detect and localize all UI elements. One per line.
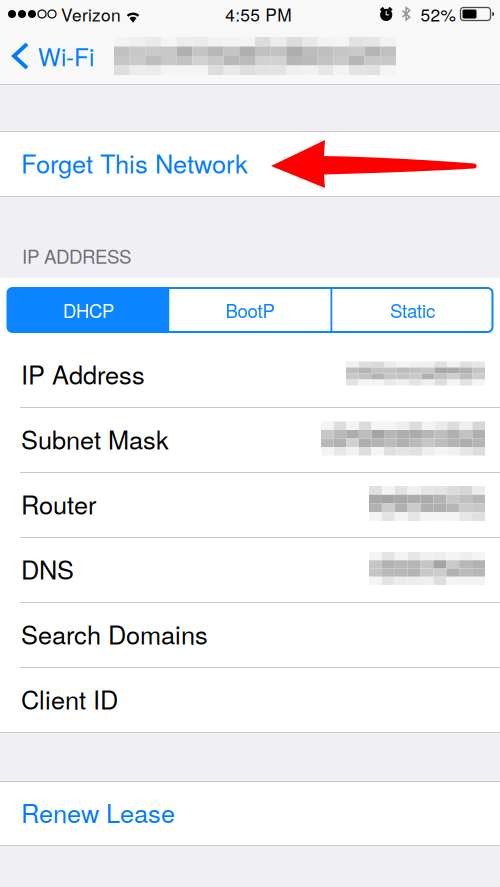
staticText: Static [390,297,435,323]
button[interactable]: Client ID [0,668,500,732]
button[interactable]: Subnet Mask [0,408,500,472]
button[interactable]: DHCP [7,288,169,332]
button[interactable]: Router [0,473,500,537]
staticText: BootP [225,297,274,323]
button[interactable]: DNS [0,538,500,602]
button[interactable]: Renew Lease [0,782,500,845]
staticText: Verizon [61,2,121,26]
button[interactable]: Static [332,288,492,332]
staticText: DHCP [63,297,114,323]
staticText: IP ADDRESS [22,242,131,269]
staticText: Router [21,485,96,522]
staticText: Forget This Network [21,144,248,181]
staticText: DNS [21,550,74,587]
staticText: 52% [420,2,455,26]
staticText: Subnet Mask [21,420,169,457]
staticText: Renew Lease [21,794,175,830]
staticText: IP Address [21,355,145,392]
button[interactable]: Forget This Network [0,132,500,196]
staticText: Search Domains [21,615,208,652]
button[interactable]: BootP [169,288,330,332]
staticText: 4:55 PM [225,2,291,26]
button[interactable]: Search Domains [0,603,500,667]
staticText: Wi-Fi [38,39,94,73]
staticText: Client ID [21,680,118,717]
button[interactable]: Wi-Fi [0,28,104,84]
button[interactable]: IP Address [0,343,500,407]
